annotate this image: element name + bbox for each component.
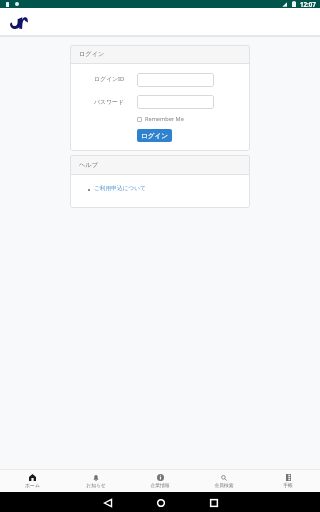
- button[interactable]: 手帳: [256, 470, 320, 492]
- button[interactable]: ホーム: [0, 470, 64, 492]
- staticText: 12:07: [300, 0, 316, 8]
- button[interactable]: Back: [85, 493, 130, 512]
- button[interactable]: Home: [138, 493, 183, 512]
- staticText: ログイン: [141, 132, 168, 140]
- staticText: ログインID: [94, 75, 125, 83]
- staticText: 手帳: [283, 482, 293, 488]
- staticText: Remember Me: [145, 115, 184, 123]
- other: Recents: [210, 499, 218, 507]
- staticText: ヘルプ: [79, 161, 98, 169]
- button[interactable]: Remember Me: [137, 115, 250, 123]
- button[interactable]: 会員検索: [192, 470, 256, 492]
- staticText: ログイン: [79, 50, 105, 58]
- button[interactable]: [137, 95, 214, 109]
- button[interactable]: ログイン: [137, 129, 172, 142]
- staticText: 企業情報: [150, 482, 170, 488]
- staticText: パスワード: [94, 98, 125, 105]
- button[interactable]: Recents: [191, 493, 236, 512]
- staticText: 会員検索: [214, 482, 234, 488]
- other: Home: [157, 499, 165, 507]
- button[interactable]: [137, 73, 214, 87]
- button[interactable]: ご利用申込について: [94, 185, 146, 192]
- other: Back: [104, 499, 112, 507]
- staticText: ホーム: [25, 482, 40, 488]
- button[interactable]: 企業情報: [128, 470, 192, 492]
- other: Logo: [10, 17, 28, 29]
- staticText: お知らせ: [86, 482, 106, 488]
- button[interactable]: お知らせ: [64, 470, 128, 492]
